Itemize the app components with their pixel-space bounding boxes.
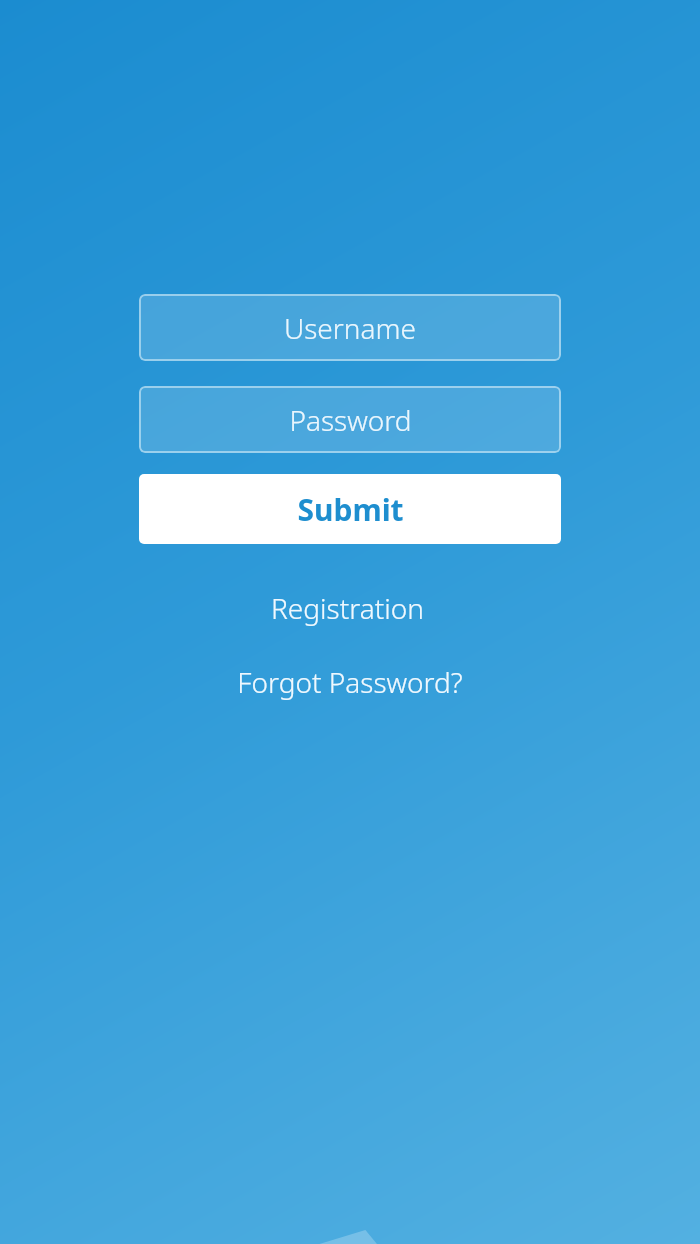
button[interactable]: Password [139, 386, 561, 453]
button[interactable]: Registration [261, 585, 434, 631]
staticText: Username [284, 309, 416, 347]
staticText: Registration [271, 589, 424, 627]
button[interactable]: Username [139, 294, 561, 361]
staticText: Forgot Password? [237, 663, 463, 701]
button[interactable]: Submit [139, 474, 561, 544]
button[interactable]: Forgot Password [227, 659, 473, 705]
staticText: Submit [297, 489, 404, 530]
staticText: Password [289, 401, 412, 439]
